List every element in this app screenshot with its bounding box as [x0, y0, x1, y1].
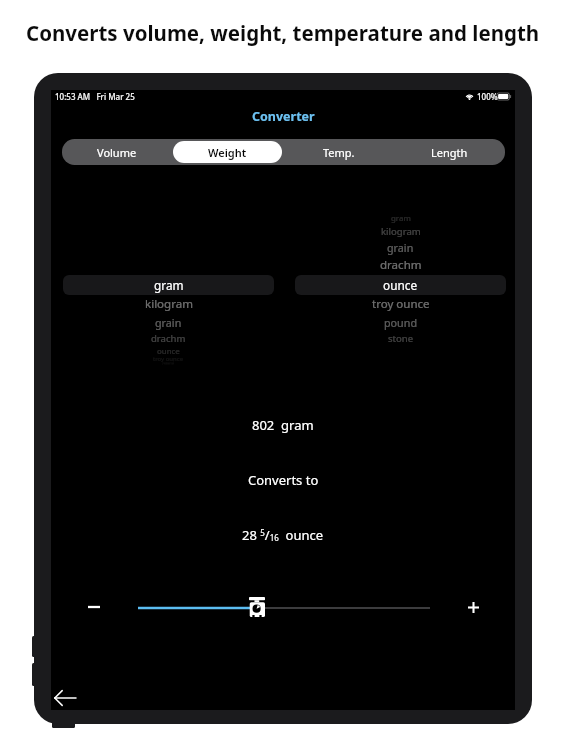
staticText: kilogram: [381, 225, 421, 238]
staticText: grain: [387, 240, 414, 255]
staticText: gram: [391, 213, 411, 224]
staticText: ounce: [157, 346, 180, 357]
staticText: pound: [162, 360, 175, 365]
staticText: Converts volume, weight, temperature and…: [26, 19, 540, 47]
staticText: stone: [388, 332, 414, 345]
button[interactable]: Converter: [252, 108, 315, 125]
staticText: drachm: [380, 257, 422, 273]
button[interactable]: Volume: [63, 141, 171, 163]
button[interactable]: Decrease: [78, 591, 110, 623]
staticText: 10:53 AM Fri Mar 25: [55, 91, 135, 102]
button[interactable]: Temp.: [284, 141, 393, 163]
staticText: Weight: [208, 145, 247, 160]
staticText: troy ounce: [153, 355, 184, 363]
button[interactable]: [295, 275, 506, 295]
staticText: Converts to: [248, 471, 319, 489]
staticText: Temp.: [323, 145, 355, 160]
staticText: stone: [164, 361, 174, 366]
button[interactable]: Increase: [457, 591, 489, 623]
staticText: pound: [384, 315, 418, 330]
staticText: 100%: [477, 91, 498, 102]
staticText: gram: [154, 277, 184, 293]
button[interactable]: Length: [395, 141, 504, 163]
staticText: ounce: [383, 277, 418, 293]
staticText: grain: [155, 315, 182, 330]
button[interactable]: Back: [49, 685, 81, 711]
staticText: 802 gram: [252, 416, 314, 434]
staticText: Length: [431, 145, 468, 160]
button[interactable]: [63, 275, 274, 295]
staticText: drachm: [151, 332, 186, 345]
button[interactable]: Amount slider: [138, 598, 430, 618]
staticText: 28 5/16 ounce: [242, 526, 324, 544]
button[interactable]: Weight: [173, 141, 282, 163]
staticText: Volume: [97, 145, 137, 160]
staticText: troy ounce: [372, 296, 430, 312]
staticText: kilogram: [145, 296, 193, 312]
